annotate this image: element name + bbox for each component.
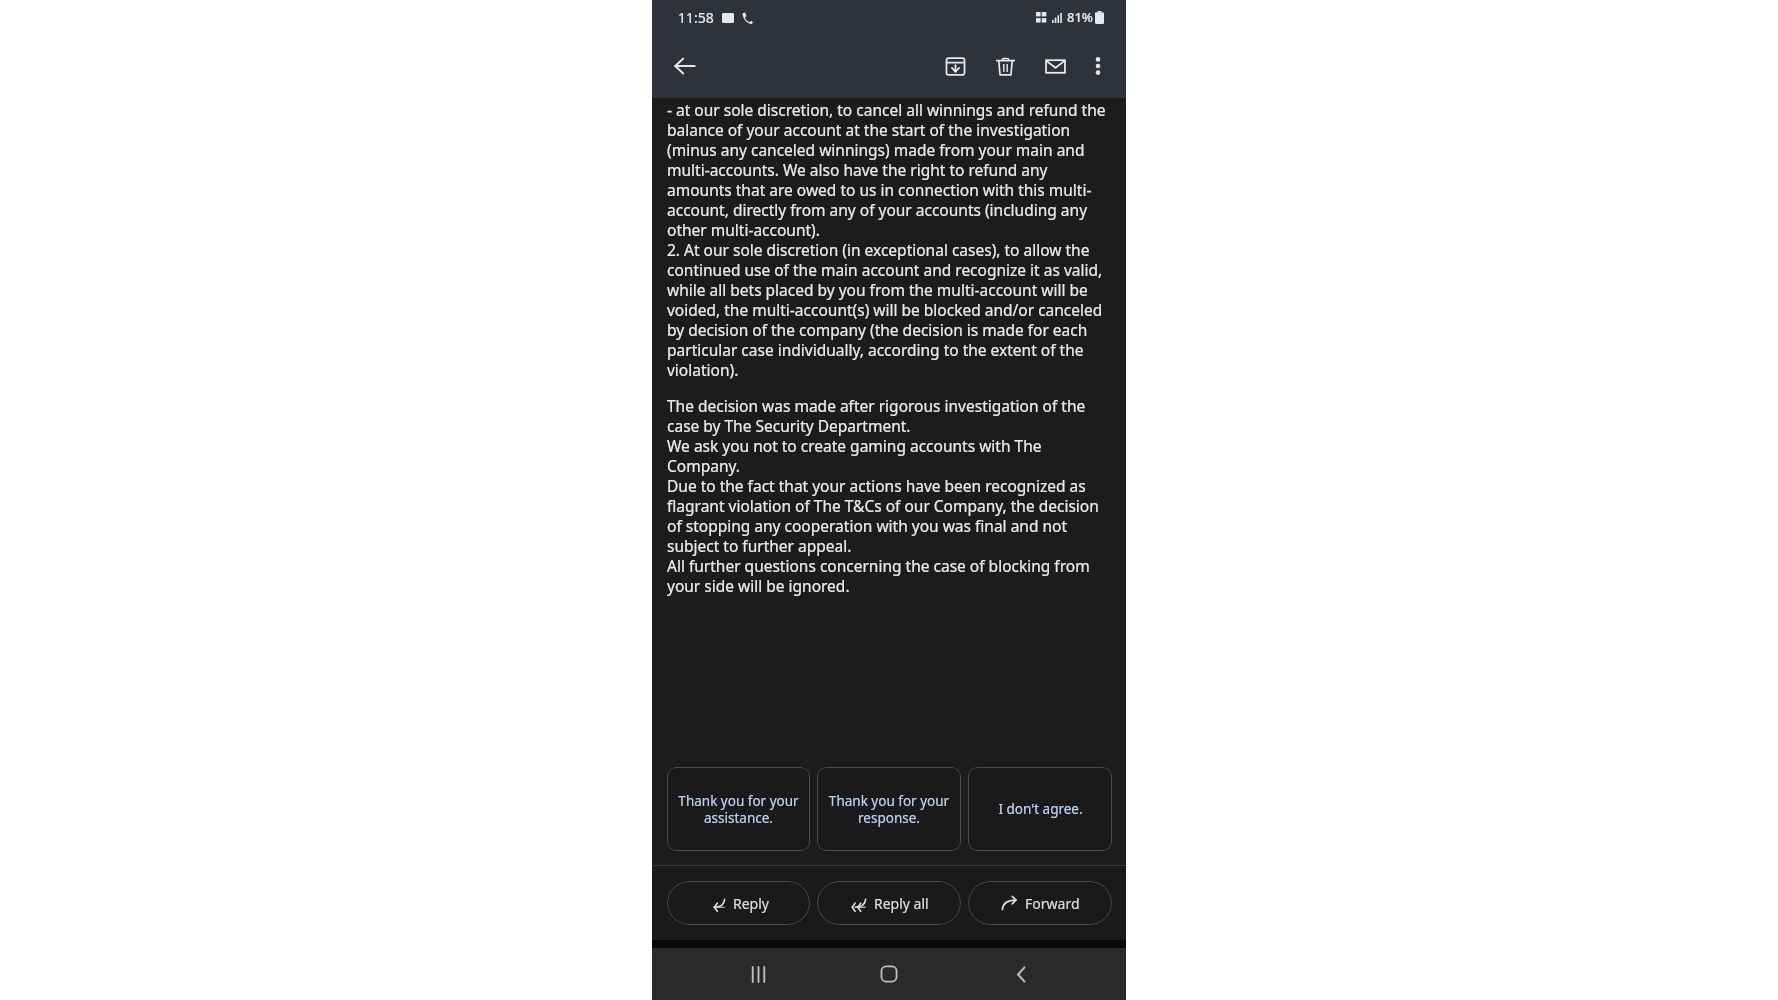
staticText: I don't agree.	[998, 800, 1083, 818]
staticText: Forward	[1025, 894, 1080, 913]
button[interactable]: Thank you for your assistance.	[667, 767, 810, 851]
button[interactable]: Reply	[667, 881, 810, 925]
button[interactable]: Recent apps	[732, 948, 784, 1000]
button[interactable]: Back	[662, 43, 708, 89]
staticText: Thank you for your assistance.	[673, 792, 804, 827]
button[interactable]: Delete	[984, 45, 1026, 87]
staticText: 11:58	[678, 8, 714, 27]
button[interactable]: Thank you for your response.	[817, 767, 961, 851]
staticText: Thank you for your response.	[823, 792, 955, 827]
button[interactable]: Forward	[968, 881, 1112, 925]
button[interactable]: Mark unread	[1034, 45, 1076, 87]
staticText: The decision was made after rigorous inv…	[667, 395, 1112, 597]
button[interactable]: Reply all	[817, 881, 961, 925]
button[interactable]: Home	[863, 948, 915, 1000]
button[interactable]: More options	[1078, 46, 1118, 86]
button[interactable]: I don't agree.	[968, 767, 1112, 851]
staticText: Reply all	[874, 894, 929, 913]
staticText: Reply	[733, 894, 769, 913]
button[interactable]: Back	[995, 948, 1047, 1000]
staticText: - at our sole discretion, to cancel all …	[667, 99, 1112, 381]
button[interactable]: Archive	[934, 45, 976, 87]
staticText: 81%	[1067, 8, 1093, 26]
